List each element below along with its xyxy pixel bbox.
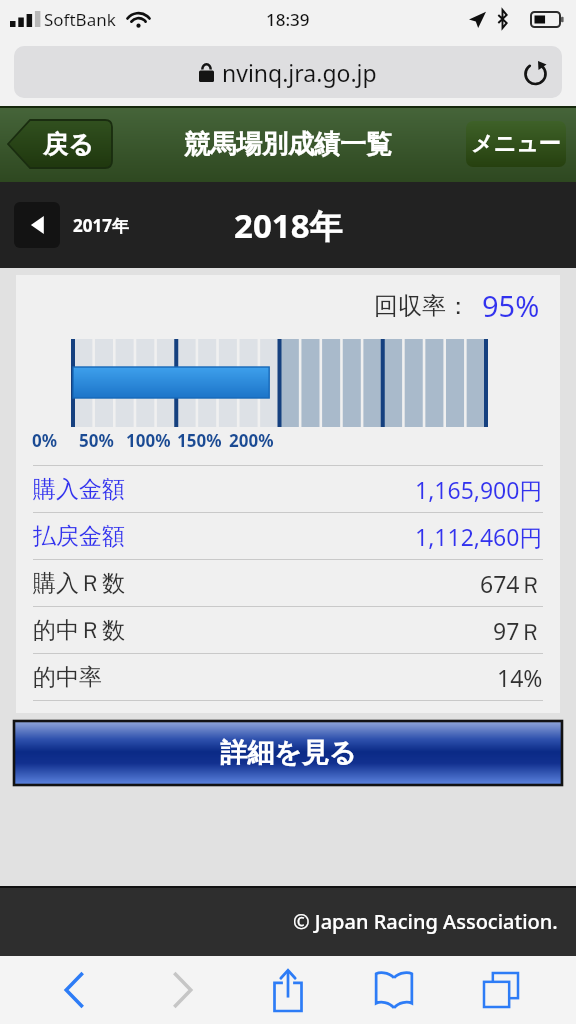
staticText: 的中率 <box>33 663 102 692</box>
button[interactable]: Forward <box>151 959 213 1021</box>
staticText: 1,112,460円 <box>415 521 543 552</box>
staticText: 2018年 <box>234 203 343 248</box>
staticText: 2017年 <box>73 214 129 237</box>
staticText: 詳細を見る <box>220 736 357 770</box>
staticText: 200% <box>229 429 274 451</box>
staticText: 的中Ｒ数 <box>33 616 125 645</box>
staticText: 回収率： <box>374 291 470 321</box>
staticText: 100% <box>126 429 171 451</box>
staticText: 購入金額 <box>33 475 125 504</box>
button[interactable]: 的中率 <box>16 653 560 700</box>
button[interactable]: 詳細を見る <box>14 721 562 785</box>
staticText: 戻る <box>43 129 94 160</box>
staticText: 97Ｒ <box>493 615 543 646</box>
staticText: © Japan Racing Association. <box>293 908 558 935</box>
staticText: 1,165,900円 <box>415 474 543 505</box>
staticText: nvinq.jra.go.jp <box>222 57 377 88</box>
staticText: 95% <box>482 286 540 325</box>
staticText: 150% <box>177 429 222 451</box>
staticText: SoftBank <box>44 8 116 31</box>
staticText: 14% <box>497 662 543 693</box>
staticText: 購入Ｒ数 <box>33 569 125 598</box>
button[interactable]: Back <box>44 959 106 1021</box>
button[interactable]: Bookmarks <box>363 959 425 1021</box>
other: Reload <box>523 60 548 85</box>
button[interactable]: 的中Ｒ数 <box>16 606 560 653</box>
button[interactable]: Tabs <box>470 959 532 1021</box>
button[interactable]: 2017年 <box>14 202 129 248</box>
staticText: 払戻金額 <box>33 522 125 551</box>
button[interactable]: 購入金額 <box>16 465 560 512</box>
button[interactable]: Share <box>257 959 319 1021</box>
staticText: メニュー <box>471 130 561 158</box>
button[interactable]: 払戻金額 <box>16 512 560 559</box>
button[interactable]: 購入Ｒ数 <box>16 559 560 606</box>
button[interactable]: メニュー <box>466 121 566 167</box>
button[interactable]: nvinq.jra.go.jp <box>14 46 562 98</box>
button[interactable]: 戻る <box>8 120 112 168</box>
staticText: 0% <box>32 429 58 451</box>
staticText: 競馬場別成績一覧 <box>184 128 392 161</box>
staticText: 50% <box>79 429 114 451</box>
staticText: 18:39 <box>266 8 310 31</box>
staticText: 674Ｒ <box>480 568 543 599</box>
